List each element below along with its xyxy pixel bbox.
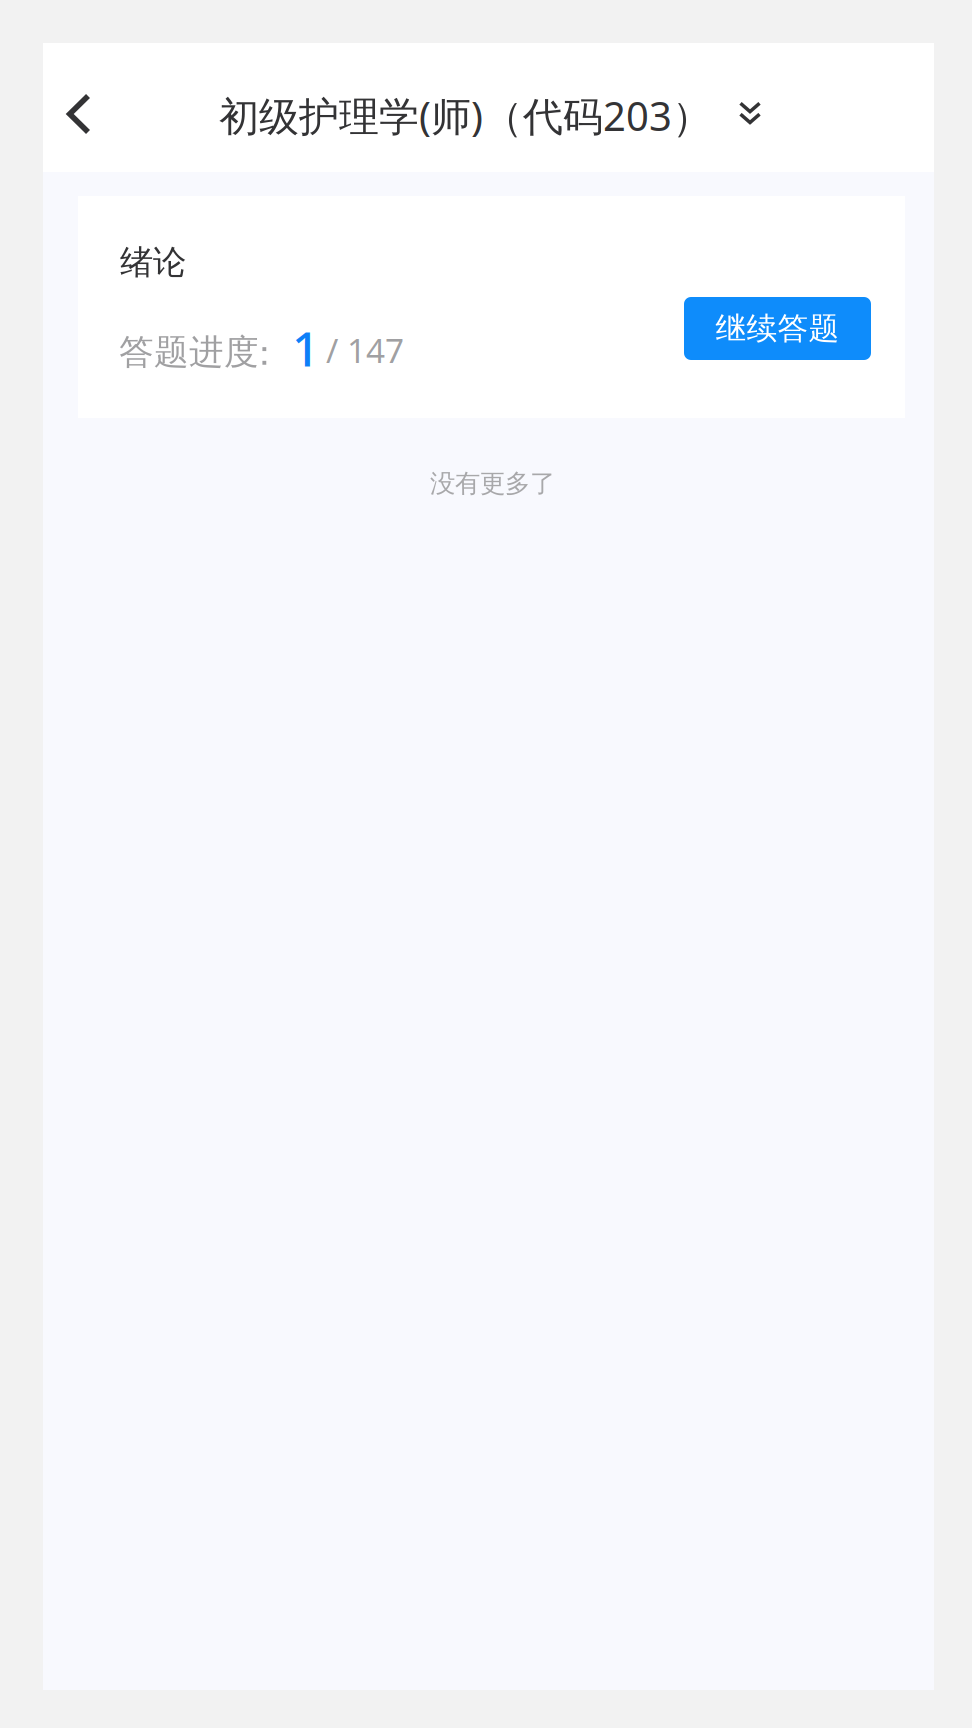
staticText: 1 (292, 316, 319, 380)
staticText: / 147 (326, 328, 404, 372)
staticText: 绪论 (120, 242, 186, 283)
staticText: 没有更多了 (430, 468, 555, 499)
staticText: 继续答题 (715, 310, 839, 347)
staticText: ： (247, 332, 282, 375)
button[interactable]: 返回 (43, 64, 115, 164)
staticText: 初级护理学(师)（代码203） (219, 89, 712, 142)
button[interactable]: 绪论 (78, 196, 905, 418)
staticText: 答题进度 (119, 331, 259, 374)
button[interactable]: 继续答题 (684, 297, 871, 360)
button[interactable]: 展开章节列表 (718, 77, 782, 149)
